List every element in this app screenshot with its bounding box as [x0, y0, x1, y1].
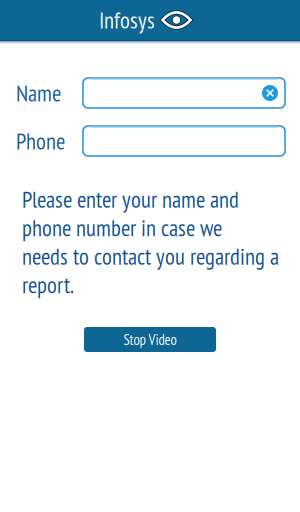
button[interactable]: Name field [83, 78, 285, 108]
staticText: Infosys [99, 5, 155, 35]
button[interactable]: Stop Video [84, 327, 216, 352]
staticText: Name [16, 78, 61, 108]
staticText: Stop Video [123, 330, 176, 349]
button[interactable]: Clear text [262, 85, 278, 101]
staticText: Please enter your name and [22, 185, 239, 214]
staticText: needs to contact you regarding a [22, 242, 279, 271]
button[interactable]: Phone field [83, 126, 285, 156]
staticText: Phone [16, 126, 65, 156]
staticText: phone number in case we [22, 213, 222, 242]
staticText: report. [22, 270, 74, 299]
